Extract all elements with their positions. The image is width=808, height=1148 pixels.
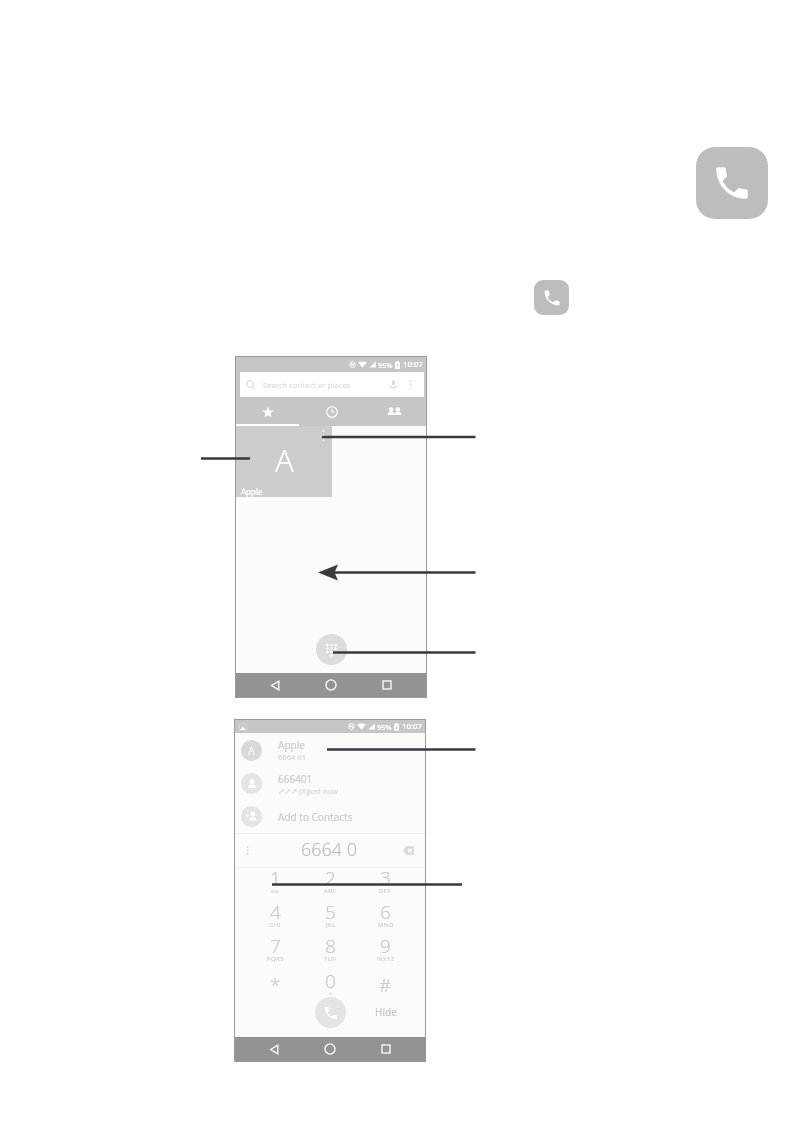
staticText: Search contact or places (263, 380, 351, 390)
button[interactable]: 8 (303, 936, 358, 970)
button[interactable]: Phone app small (534, 280, 569, 315)
staticText: 95% (377, 722, 392, 732)
staticText: JKL (326, 921, 336, 929)
button[interactable]: * (247, 970, 303, 1006)
staticText: Add to Contacts (278, 810, 353, 824)
button[interactable]: Contacts (363, 398, 426, 426)
button[interactable]: Add to Contacts (235, 800, 425, 833)
staticText: DEF (379, 887, 392, 895)
staticText: TUV (324, 955, 337, 963)
staticText: 1 (270, 865, 281, 891)
button[interactable]: # (358, 970, 413, 1006)
button[interactable]: 7 (247, 936, 303, 970)
button[interactable]: Back (246, 1037, 302, 1061)
button[interactable]: A (235, 733, 425, 767)
staticText: 6664 0 (301, 837, 358, 862)
staticText: oo (271, 887, 280, 895)
button[interactable]: 9 (358, 936, 413, 970)
staticText: WXYZ (377, 955, 395, 963)
staticText: 9 (380, 933, 391, 959)
staticText: A (275, 439, 294, 481)
staticText: GHI (269, 921, 282, 929)
button[interactable]: Home (302, 1037, 358, 1061)
button[interactable]: Hide (375, 1005, 397, 1019)
button[interactable]: Call (315, 997, 346, 1028)
button[interactable]: 1 (247, 868, 303, 902)
button[interactable]: Recents (358, 1037, 414, 1061)
staticText: 2 (325, 865, 336, 891)
staticText: 5 (325, 899, 336, 925)
staticText: Apple (278, 738, 305, 752)
button[interactable]: 5 (303, 902, 358, 936)
staticText: 6664 01 (278, 752, 307, 762)
button[interactable]: Home (303, 673, 359, 697)
button[interactable]: Favourites (236, 398, 300, 426)
staticText: 10:07 (402, 721, 422, 732)
button[interactable]: 3 (358, 868, 413, 902)
staticText: A (248, 743, 255, 758)
staticText: ↗↗↗ (8)just now (278, 786, 339, 796)
staticText: Apple (241, 486, 263, 497)
staticText: 0 (325, 968, 336, 994)
staticText: 7 (270, 933, 281, 959)
button[interactable]: Back (247, 673, 303, 697)
staticText: + (329, 990, 333, 998)
button[interactable]: Backspace (403, 846, 414, 855)
button[interactable]: A (236, 426, 332, 497)
staticText: 666401 (278, 772, 313, 786)
staticText: 4 (270, 899, 281, 925)
staticText: MNO (378, 921, 394, 929)
button[interactable]: Search contact or places (240, 372, 424, 397)
button[interactable]: 666401 (235, 767, 425, 800)
button[interactable]: Call log (300, 398, 363, 426)
button[interactable]: Recents (359, 673, 415, 697)
staticText: 6 (380, 899, 391, 925)
button[interactable]: 0 (303, 970, 358, 1006)
staticText: # (379, 972, 392, 998)
staticText: ABC (324, 887, 337, 895)
button[interactable]: Phone app (696, 147, 768, 219)
staticText: 3 (380, 865, 391, 891)
button[interactable]: 6 (358, 902, 413, 936)
staticText: 10:07 (403, 359, 423, 370)
staticText: * (270, 972, 281, 998)
button[interactable]: 2 (303, 868, 358, 902)
staticText: 8 (325, 933, 336, 959)
staticText: PQRS (267, 955, 284, 963)
button[interactable]: 4 (247, 902, 303, 936)
staticText: Hide (375, 1005, 397, 1019)
staticText: 95% (378, 360, 393, 370)
button[interactable]: Open dialpad (316, 634, 347, 665)
